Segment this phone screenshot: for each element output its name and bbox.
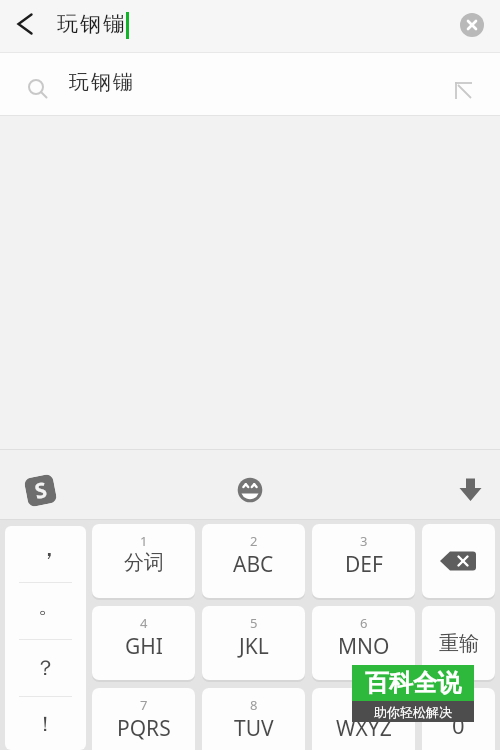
staticText: TUV bbox=[234, 714, 274, 743]
button[interactable]: 7 bbox=[92, 688, 195, 750]
button[interactable]: 。 bbox=[5, 583, 86, 639]
staticText: 7 bbox=[140, 696, 148, 714]
button[interactable]: 0 bbox=[422, 688, 495, 750]
staticText: 百科全说 bbox=[365, 668, 461, 698]
button[interactable]: 2 bbox=[202, 524, 305, 598]
staticText: WXYZ bbox=[336, 714, 392, 743]
staticText: ABC bbox=[233, 550, 274, 579]
staticText: 3 bbox=[360, 532, 368, 550]
button[interactable]: 6 bbox=[312, 606, 415, 680]
button[interactable]: ！ bbox=[5, 697, 86, 750]
button[interactable]: 4 bbox=[92, 606, 195, 680]
staticText: ！ bbox=[35, 711, 56, 737]
staticText: 。 bbox=[38, 592, 60, 620]
staticText: ， bbox=[36, 531, 62, 564]
staticText: 8 bbox=[250, 696, 258, 714]
button[interactable] bbox=[460, 13, 484, 37]
button[interactable]: 9 bbox=[312, 688, 415, 750]
staticText: 玩钢镚 bbox=[56, 11, 125, 37]
staticText: 6 bbox=[360, 614, 368, 632]
button[interactable] bbox=[458, 477, 483, 503]
button[interactable] bbox=[422, 524, 495, 598]
staticText: DEF bbox=[345, 550, 383, 579]
staticText: 分词 bbox=[124, 550, 164, 575]
button[interactable]: ？ bbox=[5, 640, 86, 696]
staticText: 4 bbox=[140, 614, 148, 632]
button[interactable]: 玩钢镚 bbox=[0, 53, 500, 115]
staticText: MNO bbox=[338, 632, 390, 661]
staticText: 玩钢镚 bbox=[68, 70, 134, 95]
staticText: PQRS bbox=[117, 714, 171, 743]
staticText: 9 bbox=[360, 696, 368, 714]
button[interactable]: S bbox=[23, 473, 57, 507]
staticText: 0 bbox=[452, 710, 465, 740]
staticText: 2 bbox=[250, 532, 258, 550]
button[interactable]: 8 bbox=[202, 688, 305, 750]
staticText: 重输 bbox=[439, 631, 479, 656]
staticText: 助你轻松解决 bbox=[374, 704, 452, 720]
button[interactable] bbox=[237, 477, 263, 503]
button[interactable]: ， bbox=[5, 526, 86, 582]
staticText: JKL bbox=[239, 632, 269, 661]
staticText: S bbox=[32, 475, 50, 506]
staticText: GHI bbox=[125, 632, 163, 661]
button[interactable]: 重输 bbox=[422, 606, 495, 680]
button[interactable]: 5 bbox=[202, 606, 305, 680]
staticText: 1 bbox=[140, 532, 148, 550]
staticText: ？ bbox=[35, 655, 56, 681]
button[interactable] bbox=[10, 6, 44, 42]
button[interactable]: 1 bbox=[92, 524, 195, 598]
staticText: 5 bbox=[250, 614, 258, 632]
button[interactable]: 3 bbox=[312, 524, 415, 598]
